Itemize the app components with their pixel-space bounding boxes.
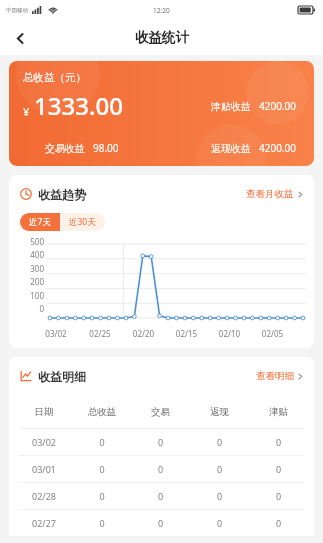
staticText: 02/20 bbox=[122, 328, 165, 339]
staticText: 1333.00 bbox=[34, 89, 123, 122]
staticText: 0 bbox=[73, 517, 131, 529]
staticText: 0 bbox=[131, 436, 190, 448]
staticText: 400 bbox=[15, 249, 44, 260]
staticText: 0 bbox=[15, 303, 44, 314]
staticText: 返现 bbox=[190, 406, 249, 418]
staticText: 02/05 bbox=[251, 328, 294, 339]
staticText: 返现收益 bbox=[211, 142, 251, 155]
staticText: 02/15 bbox=[165, 328, 208, 339]
staticText: 近7天 bbox=[29, 216, 51, 228]
button[interactable]: 02/27 bbox=[9, 510, 314, 536]
button[interactable]: 03/02 bbox=[9, 429, 314, 455]
staticText: 收益明细 bbox=[38, 369, 86, 384]
staticText: 500 bbox=[15, 236, 44, 247]
staticText: 03/01 bbox=[15, 463, 73, 475]
staticText: 收益趋势 bbox=[38, 187, 86, 202]
staticText: 0 bbox=[73, 463, 131, 475]
staticText: 0 bbox=[73, 490, 131, 502]
staticText: 0 bbox=[131, 490, 190, 502]
staticText: 津贴 bbox=[249, 406, 308, 418]
staticText: 日期 bbox=[15, 406, 73, 418]
staticText: 02/27 bbox=[15, 517, 73, 529]
staticText: 100 bbox=[15, 290, 44, 301]
staticText: 4200.00 bbox=[259, 99, 296, 113]
button[interactable]: 03/01 bbox=[9, 456, 314, 482]
staticText: 200 bbox=[15, 276, 44, 287]
staticText: 查看明细 bbox=[256, 370, 294, 382]
staticText: 0 bbox=[131, 463, 190, 475]
staticText: 02/10 bbox=[208, 328, 251, 339]
staticText: 02/28 bbox=[15, 490, 73, 502]
staticText: 0 bbox=[73, 436, 131, 448]
button[interactable]: 近30天 bbox=[60, 213, 105, 231]
button[interactable]: 查看明细 bbox=[256, 370, 304, 382]
button[interactable]: 查看月收益 bbox=[246, 188, 304, 200]
staticText: 总收益（元） bbox=[23, 71, 86, 84]
staticText: 收益统计 bbox=[135, 29, 189, 46]
staticText: 03/02 bbox=[15, 436, 73, 448]
staticText: 12:20 bbox=[153, 6, 170, 15]
staticText: ¥ bbox=[23, 104, 30, 119]
staticText: 0 bbox=[190, 517, 249, 529]
staticText: 中国移动 bbox=[6, 7, 28, 14]
staticText: 津贴收益 bbox=[211, 100, 251, 113]
staticText: 总收益 bbox=[73, 406, 131, 418]
staticText: 98.00 bbox=[93, 141, 119, 155]
staticText: 03/02 bbox=[34, 328, 78, 339]
staticText: 查看月收益 bbox=[246, 188, 294, 200]
staticText: 0 bbox=[190, 463, 249, 475]
button[interactable]: 总收益（元） bbox=[9, 61, 314, 166]
button[interactable]: 近7天 bbox=[20, 213, 60, 231]
staticText: 300 bbox=[15, 263, 44, 274]
button[interactable]: 02/28 bbox=[9, 483, 314, 509]
staticText: 02/25 bbox=[78, 328, 122, 339]
staticText: 近30天 bbox=[69, 216, 96, 228]
staticText: 交易收益 bbox=[45, 142, 85, 155]
button[interactable]: Back bbox=[4, 22, 36, 54]
staticText: 0 bbox=[249, 490, 308, 502]
staticText: 0 bbox=[190, 436, 249, 448]
staticText: 0 bbox=[190, 490, 249, 502]
staticText: 交易 bbox=[131, 406, 190, 418]
button[interactable]: 日期 bbox=[9, 399, 314, 425]
staticText: 0 bbox=[131, 517, 190, 529]
staticText: 0 bbox=[249, 436, 308, 448]
staticText: 0 bbox=[249, 517, 308, 529]
staticText: 4200.00 bbox=[259, 141, 296, 155]
staticText: 0 bbox=[249, 463, 308, 475]
